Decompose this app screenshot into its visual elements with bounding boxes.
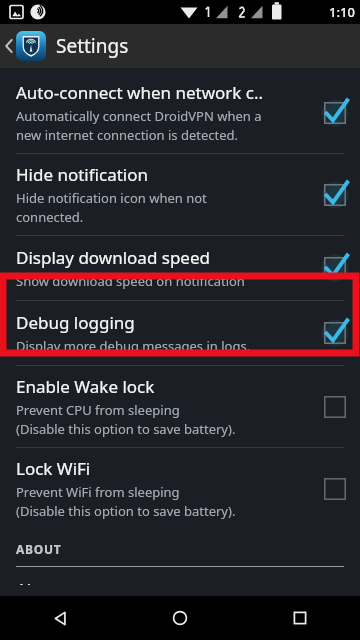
staticText: Prevent CPU from sleeping — [16, 401, 180, 419]
button[interactable]: Auto-connect when network c.. — [0, 72, 360, 153]
staticText: (Disable this option to save battery). — [16, 420, 236, 438]
staticText: new internet connection is detected. — [16, 126, 239, 144]
staticText: Enable Wake lock — [16, 375, 155, 398]
button[interactable]: Lock WiFi — [0, 448, 360, 529]
button[interactable]: Debug logging — [0, 301, 360, 365]
staticText: Prevent WiFi from sleeping — [16, 483, 180, 501]
staticText: Settings — [56, 33, 129, 59]
button[interactable]: Hide notification — [0, 154, 360, 235]
staticText: connected. — [16, 208, 84, 226]
staticText: Automatically connect DroidVPN when a — [16, 107, 262, 125]
staticText: About — [16, 578, 65, 585]
staticText: ABOUT — [16, 541, 62, 557]
button[interactable]: Enable Wake lock — [0, 366, 360, 447]
staticText: 1:10 — [329, 3, 355, 21]
staticText: Display download speed — [16, 246, 210, 269]
staticText: (Disable this option to save battery). — [16, 502, 236, 520]
staticText: Show download speed on notification — [16, 272, 245, 290]
staticText: Display more debug messages in logs. — [16, 337, 251, 355]
button[interactable]: Navigate up — [0, 27, 135, 65]
button[interactable]: Recent apps — [240, 596, 360, 640]
staticText: Hide notification — [16, 163, 149, 186]
staticText: Auto-connect when network c.. — [16, 81, 264, 104]
staticText: Debug logging — [16, 311, 135, 334]
staticText: Lock WiFi — [16, 457, 91, 480]
button[interactable]: Back — [0, 596, 120, 640]
button[interactable]: Display download speed — [0, 236, 360, 300]
staticText: Hide notification icon when not — [16, 189, 207, 207]
button[interactable]: About — [0, 567, 360, 596]
button[interactable]: Home — [120, 596, 240, 640]
